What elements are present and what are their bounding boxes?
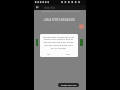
staticText: messages and calls are end to end encryp… [39,9,82,12]
button[interactable]: Back [36,6,39,9]
staticText: +964 07814624343 [43,17,75,22]
staticText: made with xyz [61,84,77,87]
button[interactable]: chat info [44,6,56,10]
staticText: placeholder paragraph that wraps onto ex… [43,35,74,50]
staticText: yes [66,52,70,55]
staticText: chat info [44,6,56,10]
button[interactable]: no [47,52,51,55]
staticText: no [47,52,51,55]
button[interactable]: yes [66,52,70,55]
